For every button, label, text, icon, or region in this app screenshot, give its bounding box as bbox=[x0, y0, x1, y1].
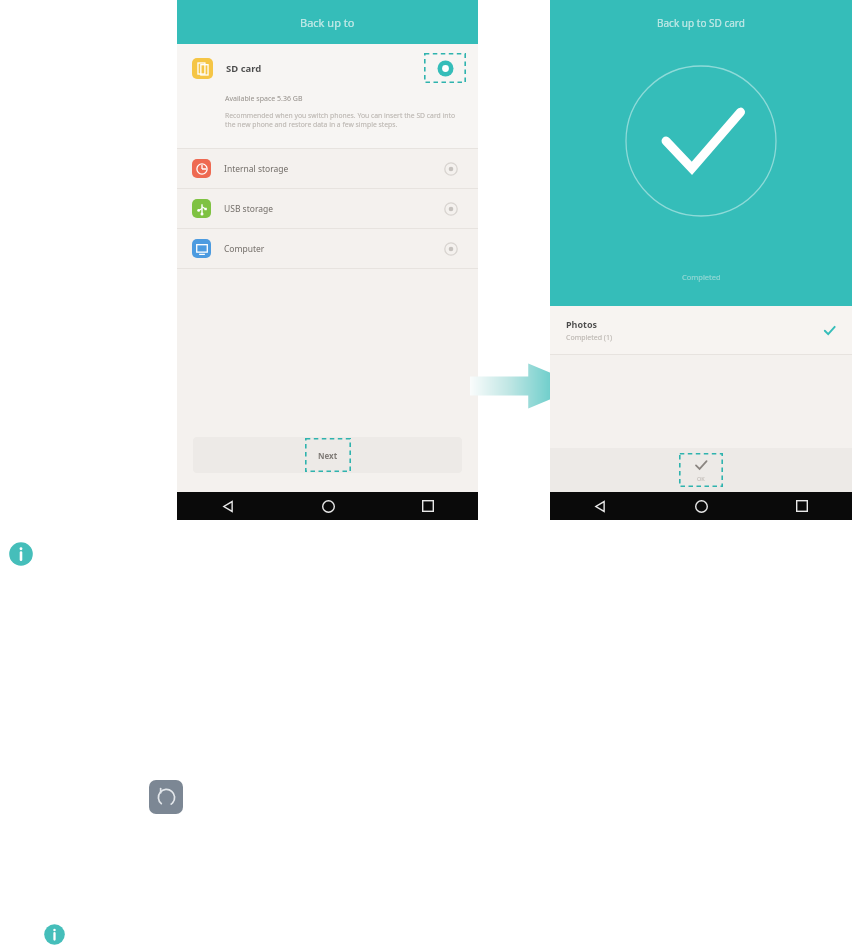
staticText: Photos bbox=[566, 318, 598, 330]
button[interactable]: Recents bbox=[789, 493, 815, 519]
button[interactable]: Info bbox=[43, 923, 66, 946]
button[interactable] bbox=[193, 437, 462, 473]
button[interactable]: Computer bbox=[192, 229, 458, 268]
staticText: Back up to bbox=[300, 15, 355, 30]
staticText: OK bbox=[697, 475, 705, 482]
button[interactable]: OK bbox=[679, 453, 723, 487]
button[interactable]: USB storage bbox=[192, 189, 458, 228]
staticText: SD card bbox=[226, 62, 262, 75]
button[interactable]: Back bbox=[215, 493, 241, 519]
button[interactable]: Home bbox=[315, 493, 341, 519]
staticText: Completed bbox=[682, 272, 721, 282]
staticText: Recommended when you switch phones. You … bbox=[225, 111, 464, 129]
staticText: Available space 5.36 GB bbox=[225, 94, 303, 104]
staticText: Completed (1) bbox=[566, 333, 613, 343]
button[interactable]: Home bbox=[688, 493, 714, 519]
staticText: Next bbox=[318, 450, 338, 461]
staticText: Back up to SD card bbox=[657, 16, 745, 30]
staticText: Computer bbox=[224, 243, 265, 255]
staticText: Internal storage bbox=[224, 163, 289, 175]
button[interactable]: SD card bbox=[177, 44, 478, 148]
button[interactable]: Internal storage bbox=[192, 149, 458, 188]
button[interactable]: Info bbox=[8, 541, 34, 567]
button[interactable]: Photos bbox=[566, 306, 836, 354]
button[interactable]: Back bbox=[587, 493, 613, 519]
staticText: USB storage bbox=[224, 203, 274, 215]
button[interactable]: Recents bbox=[415, 493, 441, 519]
button[interactable]: Restore bbox=[149, 780, 183, 814]
